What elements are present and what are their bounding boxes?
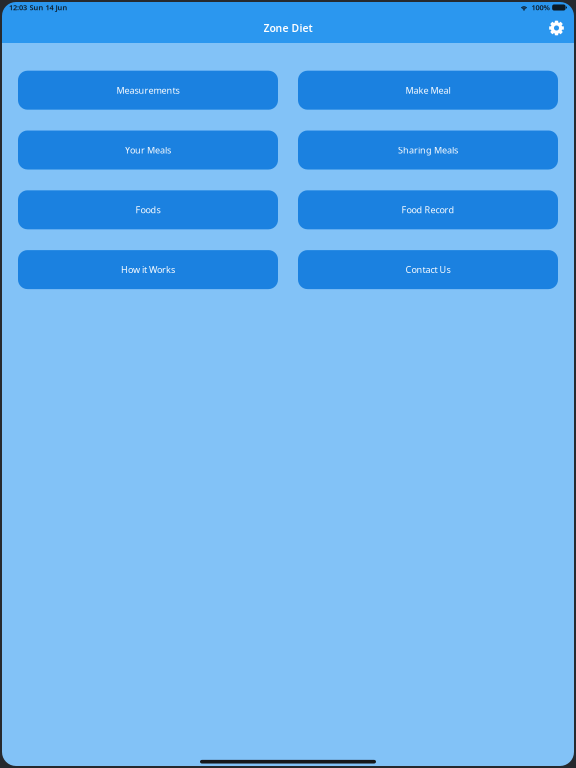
staticText: Food Record [401, 204, 454, 216]
staticText: Make Meal [405, 84, 450, 96]
staticText: Sun 14 Jun [30, 2, 68, 12]
button[interactable]: Make Meal [298, 71, 558, 110]
button[interactable]: Food Record [298, 190, 558, 229]
staticText: Zone Diet [263, 21, 312, 35]
button[interactable]: Foods [18, 190, 278, 229]
staticText: Your Meals [125, 144, 171, 156]
staticText: 100% [531, 2, 549, 12]
button[interactable]: Sharing Meals [298, 130, 558, 169]
staticText: Contact Us [405, 263, 450, 276]
button[interactable]: Your Meals [18, 130, 278, 169]
button[interactable]: How it Works [18, 250, 278, 289]
staticText: Foods [135, 204, 160, 216]
button[interactable]: Contact Us [298, 250, 558, 289]
staticText: 12:03 [9, 2, 27, 12]
staticText: Sharing Meals [398, 144, 458, 156]
button[interactable]: Settings [543, 15, 569, 41]
staticText: Measurements [116, 84, 179, 96]
button[interactable]: Measurements [18, 71, 278, 110]
staticText: How it Works [121, 263, 175, 276]
